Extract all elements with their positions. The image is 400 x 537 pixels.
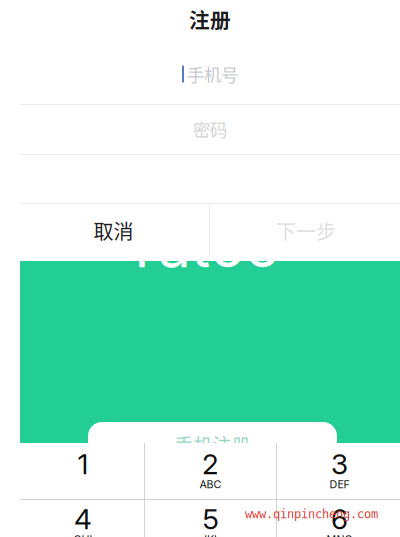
button[interactable]: 5 — [145, 498, 276, 537]
button[interactable]: 6 — [278, 498, 400, 537]
staticText: GHI — [73, 533, 92, 537]
button[interactable]: 2 — [145, 443, 276, 499]
staticText: 2 — [202, 447, 219, 481]
button[interactable]: 1 — [21, 443, 145, 499]
staticText: 密码 — [193, 116, 227, 142]
button[interactable]: 4 — [21, 498, 145, 537]
button[interactable]: 取消 — [18, 204, 209, 257]
staticText: 3 — [331, 447, 348, 481]
staticText: 手机号 — [187, 61, 238, 87]
staticText: 1 — [77, 447, 88, 481]
staticText: www.qinpincheng.com — [245, 507, 378, 521]
staticText: JKL — [201, 533, 220, 537]
staticText: 下一步 — [276, 216, 336, 245]
staticText: ABC — [199, 478, 221, 491]
staticText: 手机注册 — [174, 430, 250, 457]
staticText: 4 — [74, 502, 92, 536]
staticText: 6 — [331, 502, 348, 536]
staticText: MNO — [326, 533, 352, 537]
staticText: 取消 — [93, 216, 133, 245]
staticText: 5 — [202, 502, 218, 536]
button[interactable]: 下一步 — [210, 204, 400, 257]
staticText: DEF — [329, 478, 349, 491]
staticText: 注册 — [189, 4, 231, 34]
staticText: Yatoo — [122, 210, 280, 281]
button[interactable]: 3 — [278, 443, 400, 499]
